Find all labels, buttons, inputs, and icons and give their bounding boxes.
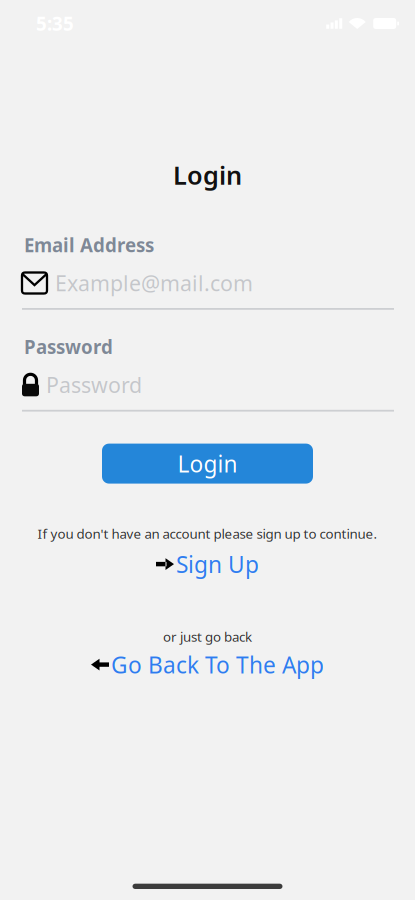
button[interactable]: Password [22,372,394,398]
staticText: Sign Up [176,549,259,579]
button[interactable]: Sign Up [156,552,259,576]
staticText: Password [46,371,142,399]
staticText: Login [173,158,242,192]
button[interactable]: Go Back To The App [91,653,324,677]
staticText: 5:35 [36,11,74,36]
button[interactable]: Example@mail.com [22,270,394,296]
staticText: Example@mail.com [55,269,253,297]
staticText: Email Address [24,233,154,257]
staticText: Login [177,448,237,479]
button[interactable]: Login [102,444,313,484]
staticText: If you don't have an account please sign… [37,525,377,542]
staticText: or just go back [163,628,252,645]
staticText: Go Back To The App [111,649,324,680]
staticText: Password [24,334,113,359]
